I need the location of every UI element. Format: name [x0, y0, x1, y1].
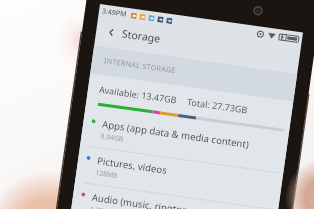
staticText: Total: 27.73GB — [186, 95, 249, 116]
staticText: 1.70MB — [90, 205, 116, 209]
staticText: INTERNAL STORAGE — [103, 56, 177, 76]
staticText: Storage — [121, 26, 162, 46]
staticText: Available: 13.47GB — [98, 83, 178, 106]
staticText: Audio (music, ringtones... — [91, 191, 207, 209]
button[interactable]: Pictures, videos — [75, 146, 283, 209]
staticText: 8.04GB — [100, 131, 124, 143]
staticText: 3:49PM — [101, 6, 127, 20]
button[interactable]: Back — [103, 24, 119, 40]
staticText: 128MB — [95, 168, 119, 180]
button[interactable]: Apps (app data & media content) — [80, 109, 288, 174]
staticText: Apps (app data & media content) — [101, 118, 250, 151]
button[interactable]: Audio (music, ringtones... — [70, 182, 278, 209]
staticText: Pictures, videos — [96, 154, 168, 177]
